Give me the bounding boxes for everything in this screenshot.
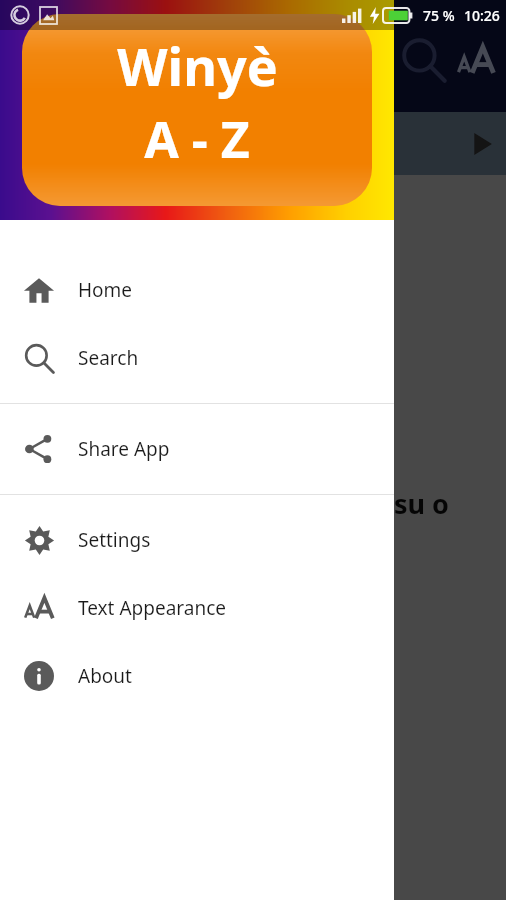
- button[interactable]: Share App: [0, 415, 394, 483]
- staticText: Text Appearance: [78, 595, 227, 621]
- staticText: About: [78, 663, 132, 689]
- staticText: Home: [78, 277, 133, 303]
- staticText: Settings: [78, 527, 151, 553]
- button[interactable]: Search: [0, 324, 394, 392]
- button[interactable]: Settings: [0, 506, 394, 574]
- staticText: Share App: [78, 436, 170, 462]
- staticText: A - Z: [144, 105, 250, 173]
- staticText: o su o: [370, 485, 449, 522]
- button[interactable]: Home: [0, 256, 394, 324]
- staticText: Search: [78, 345, 139, 371]
- button[interactable]: About: [0, 642, 394, 710]
- button[interactable]: Play: [458, 120, 506, 168]
- button[interactable]: Search: [398, 34, 450, 86]
- staticText: Winyè: [117, 30, 278, 101]
- button[interactable]: Text Appearance: [0, 574, 394, 642]
- button[interactable]: Text Appearance: [450, 34, 502, 86]
- staticText: 10:26: [464, 6, 500, 25]
- staticText: 75 %: [423, 6, 455, 25]
